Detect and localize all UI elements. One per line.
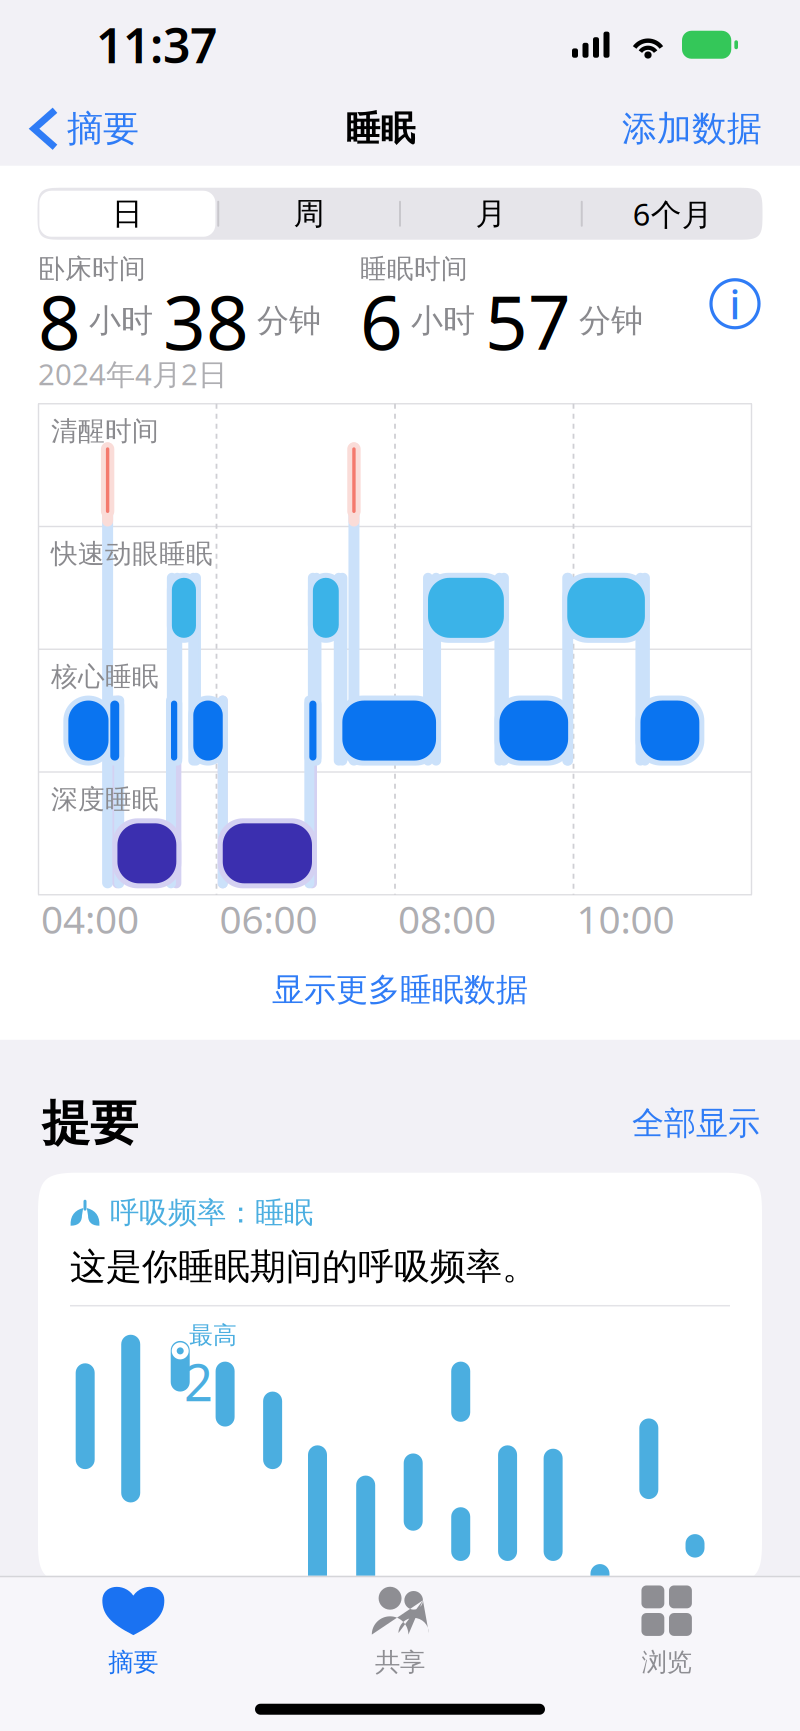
- staticText: 卧床时间: [38, 252, 146, 285]
- staticText: 分钟: [579, 301, 643, 340]
- staticText: 57: [485, 271, 571, 370]
- staticText: 呼吸频率：睡眠: [110, 1195, 313, 1231]
- staticText: 日: [112, 195, 143, 233]
- staticText: 显示更多睡眠数据: [272, 970, 528, 1009]
- staticText: 6: [360, 271, 403, 370]
- staticText: 6个月: [633, 193, 713, 234]
- button[interactable]: 呼吸频率：睡眠: [38, 1173, 762, 1583]
- staticText: 月: [475, 195, 506, 233]
- staticText: 38: [163, 271, 249, 370]
- staticText: 最高: [189, 1320, 237, 1350]
- staticText: 小时: [411, 301, 475, 340]
- staticText: 摘要: [67, 107, 139, 151]
- button[interactable]: 浏览: [533, 1577, 800, 1685]
- staticText: 04:00: [41, 893, 139, 944]
- button[interactable]: 周: [219, 188, 399, 240]
- button[interactable]: 共享: [267, 1577, 533, 1685]
- staticText: 核心睡眠: [51, 660, 159, 693]
- staticText: 2024年4月2日: [38, 354, 227, 393]
- staticText: i: [729, 277, 740, 330]
- staticText: 添加数据: [622, 107, 762, 150]
- staticText: 睡眠时间: [360, 252, 468, 285]
- staticText: 浏览: [642, 1647, 692, 1678]
- button[interactable]: 日: [37, 188, 217, 240]
- button[interactable]: 全部显示: [632, 1104, 760, 1143]
- staticText: 提要: [42, 1094, 138, 1153]
- button[interactable]: 摘要: [26, 97, 147, 161]
- staticText: 分钟: [257, 301, 321, 340]
- staticText: 8: [38, 271, 81, 370]
- staticText: 周: [294, 195, 325, 233]
- button[interactable]: 摘要: [0, 1577, 267, 1685]
- button[interactable]: 月: [401, 188, 581, 240]
- staticText: 08:00: [398, 893, 496, 944]
- staticText: 06:00: [219, 893, 317, 944]
- staticText: 快速动眼睡眠: [51, 537, 213, 570]
- button[interactable]: 显示更多睡眠数据: [0, 943, 800, 1037]
- button[interactable]: 睡眠数据说明: [704, 273, 766, 335]
- staticText: 清醒时间: [51, 415, 159, 448]
- staticText: 21: [184, 1348, 242, 1415]
- staticText: 共享: [375, 1647, 425, 1678]
- staticText: 11:37: [96, 13, 217, 77]
- staticText: 摘要: [108, 1647, 158, 1678]
- staticText: 全部显示: [632, 1104, 760, 1143]
- staticText: 深度睡眠: [51, 783, 159, 816]
- staticText: 睡眠: [345, 107, 415, 150]
- staticText: 小时: [89, 301, 153, 340]
- staticText: 这是你睡眠期间的呼吸频率。: [70, 1245, 538, 1289]
- button[interactable]: 6个月: [583, 188, 763, 240]
- staticText: 10:00: [576, 893, 674, 944]
- button[interactable]: 添加数据: [614, 97, 770, 160]
